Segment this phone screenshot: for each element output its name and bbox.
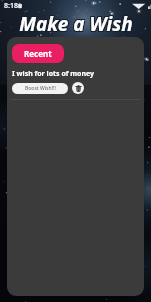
button[interactable]: Delete wish — [72, 82, 84, 94]
staticText: Boost Wish!!! — [25, 85, 56, 92]
staticText: Make a Wish — [19, 12, 133, 37]
staticText: Make a Wish — [18, 10, 132, 35]
staticText: 8:18 — [4, 1, 18, 11]
staticText: Make a Wish — [19, 11, 133, 36]
button[interactable]: Recent — [12, 44, 64, 63]
staticText: I wish for lots of money — [12, 69, 95, 79]
staticText: Make a Wish — [19, 10, 133, 35]
staticText: Make a Wish — [20, 10, 134, 35]
staticText: Make a Wish — [20, 11, 134, 36]
staticText: Make a Wish — [20, 12, 134, 37]
staticText: Recent — [24, 48, 52, 59]
staticText: Make a Wish — [18, 11, 132, 36]
staticText: Make a Wish — [18, 12, 132, 37]
button[interactable]: Boost Wish!!! — [12, 83, 68, 94]
